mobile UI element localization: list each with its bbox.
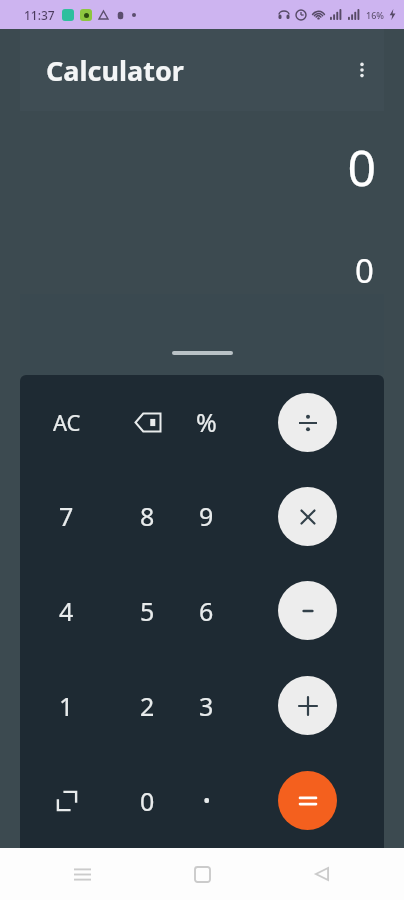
button[interactable] [231,469,384,563]
button[interactable]: 2 [113,658,182,753]
staticText: 8 [140,499,155,533]
button[interactable]: 1 [20,658,113,753]
button[interactable]: % [182,375,231,469]
staticText: 3 [199,689,214,723]
staticText: 4 [59,594,74,628]
staticText: % [196,405,217,439]
button[interactable]: Home [180,852,224,896]
button[interactable]: AC [20,375,113,469]
staticText: AC [53,407,81,437]
button[interactable] [231,658,384,753]
button[interactable]: 6 [182,563,231,658]
button[interactable]: 7 [20,469,113,563]
staticText: 6 [199,594,214,628]
button[interactable] [231,375,384,469]
button[interactable]: 9 [182,469,231,563]
button[interactable]: 3 [182,658,231,753]
staticText: 9 [199,499,214,533]
staticText: 0 [355,248,374,293]
staticText: 0 [140,784,155,818]
button[interactable]: • [182,753,231,848]
button[interactable]: Backspace [113,375,182,469]
staticText: 2 [140,689,155,723]
button[interactable]: 8 [113,469,182,563]
button[interactable]: 0 [113,753,182,848]
staticText: 1 [59,689,74,723]
button[interactable]: More options [340,48,384,92]
staticText: Calculator [46,52,184,89]
staticText: 11:37 [24,7,55,23]
button[interactable] [231,563,384,658]
button[interactable] [231,753,384,848]
button[interactable]: 4 [20,563,113,658]
button[interactable]: Recent apps [60,852,104,896]
button[interactable]: Expand [20,753,113,848]
staticText: 5 [140,594,155,628]
staticText: 7 [59,499,74,533]
staticText: • [203,787,211,814]
staticText: 0 [347,133,376,201]
staticText: 16% [366,9,384,21]
button[interactable]: Back [300,852,344,896]
button[interactable]: 5 [113,563,182,658]
